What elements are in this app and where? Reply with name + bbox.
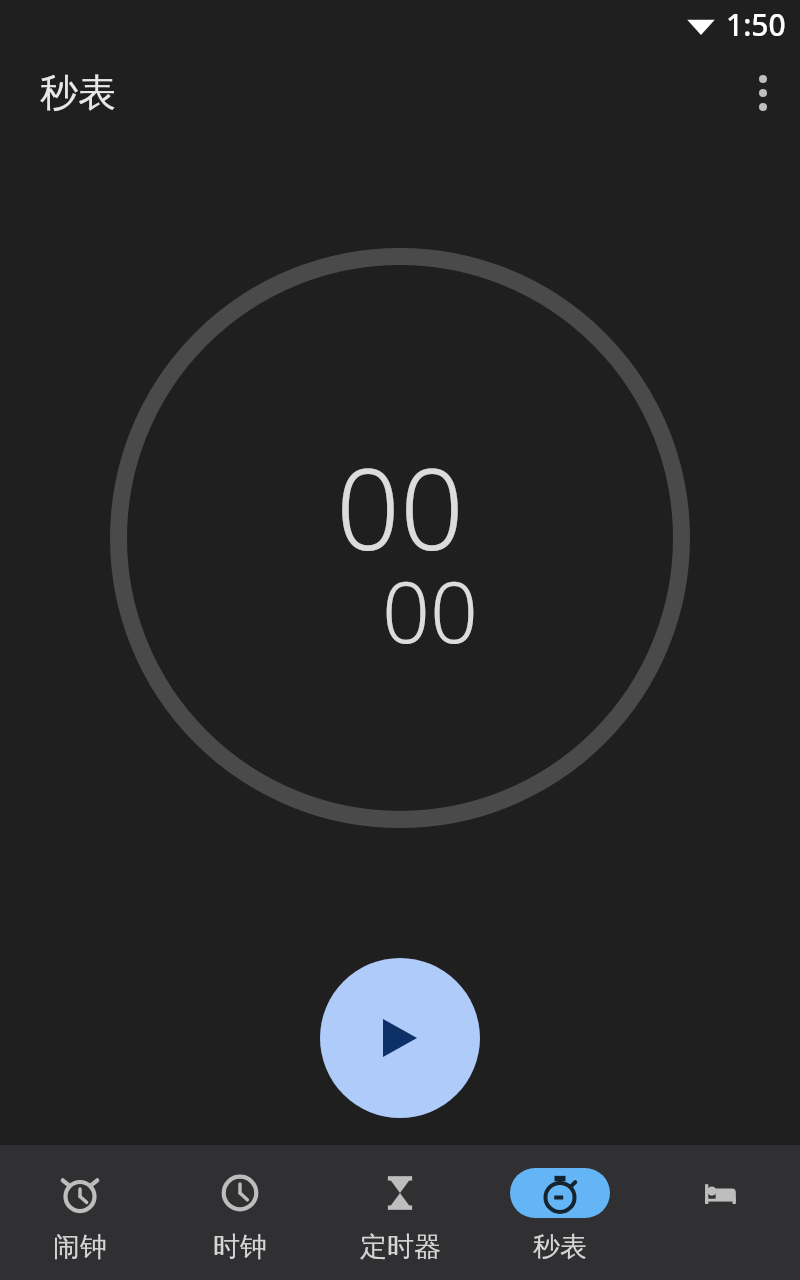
staticText: 秒表 xyxy=(40,69,116,117)
button[interactable]: 定时器 xyxy=(320,1145,480,1280)
button[interactable]: 时钟 xyxy=(160,1145,320,1280)
staticText: 00 xyxy=(336,430,464,583)
staticText: 00 xyxy=(382,553,478,667)
staticText: 时钟 xyxy=(213,1230,267,1264)
staticText: 闹钟 xyxy=(53,1230,107,1264)
button[interactable]: Start xyxy=(320,958,480,1118)
staticText: 定时器 xyxy=(360,1230,441,1264)
button[interactable]: More options xyxy=(735,65,791,121)
button[interactable]: 秒表 xyxy=(480,1145,640,1280)
staticText: 秒表 xyxy=(533,1230,587,1264)
staticText: 1:50 xyxy=(726,4,786,45)
button[interactable]: 闹钟 xyxy=(0,1145,160,1280)
button[interactable]: Bedtime xyxy=(640,1145,800,1280)
